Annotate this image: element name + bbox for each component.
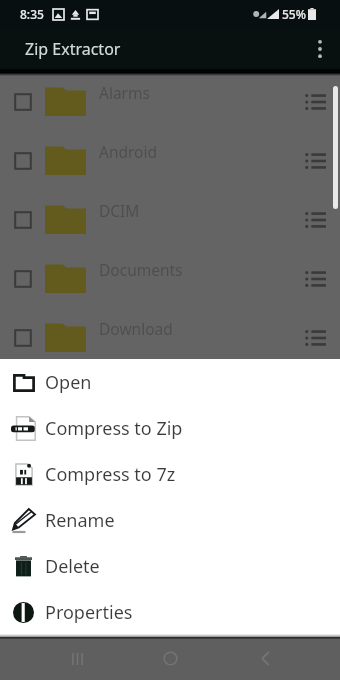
staticText: Documents: [99, 259, 183, 280]
button[interactable]: Android: [0, 131, 340, 190]
button[interactable]: Alarms: [0, 72, 340, 131]
staticText: 8:35: [20, 6, 44, 22]
button[interactable]: List options: [296, 83, 334, 121]
staticText: Android: [99, 141, 158, 162]
staticText: Rename: [45, 508, 115, 533]
button[interactable]: Open: [0, 359, 340, 405]
button[interactable]: DCIM: [0, 190, 340, 249]
button[interactable]: Rename: [0, 497, 340, 543]
staticText: Compress to 7z: [45, 462, 176, 487]
button[interactable]: List options: [296, 142, 334, 180]
staticText: Open: [45, 370, 92, 395]
button[interactable]: Home: [146, 637, 194, 680]
button[interactable]: Download: [0, 308, 340, 367]
staticText: Delete: [45, 554, 100, 579]
button[interactable]: List options: [296, 201, 334, 239]
button[interactable]: Recents: [53, 637, 101, 680]
button[interactable]: Delete: [0, 543, 340, 589]
staticText: 55%: [282, 6, 306, 22]
button[interactable]: Compress to 7z: [0, 451, 340, 497]
staticText: Alarms: [99, 82, 150, 103]
staticText: Zip Extractor: [25, 38, 121, 60]
button[interactable]: List options: [296, 260, 334, 298]
staticText: Properties: [45, 600, 133, 625]
button[interactable]: Properties: [0, 589, 340, 635]
button[interactable]: Documents: [0, 249, 340, 308]
button[interactable]: Compress to Zip: [0, 405, 340, 451]
button[interactable]: More options: [299, 28, 340, 70]
staticText: DCIM: [99, 200, 140, 221]
staticText: Compress to Zip: [45, 416, 183, 441]
button[interactable]: List options: [296, 319, 334, 357]
staticText: Download: [99, 318, 173, 339]
button[interactable]: Back: [241, 637, 289, 680]
